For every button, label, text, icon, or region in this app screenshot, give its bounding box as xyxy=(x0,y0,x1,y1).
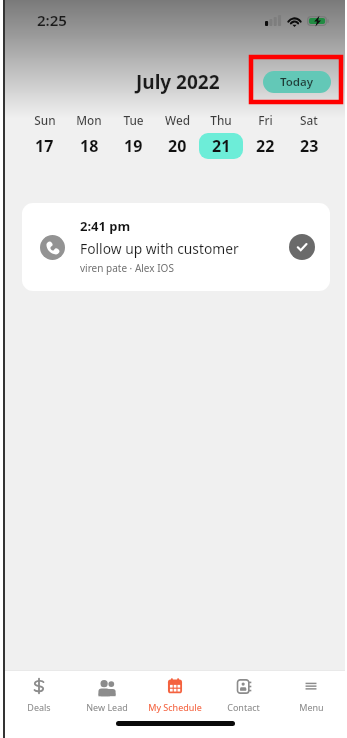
button[interactable]: Contact xyxy=(209,671,277,717)
staticText: 21 xyxy=(212,135,231,157)
staticText: My Schedule xyxy=(148,701,202,713)
staticText: viren pate · Alex IOS xyxy=(80,261,174,275)
staticText: Wed xyxy=(165,112,190,128)
button[interactable]: Mon xyxy=(67,112,111,159)
staticText: Mon xyxy=(76,112,102,128)
staticText: Contact xyxy=(227,701,260,713)
button[interactable]: Tue xyxy=(111,112,155,159)
staticText: New Lead xyxy=(86,701,128,713)
button[interactable]: New Lead xyxy=(73,671,141,717)
staticText: 22 xyxy=(256,135,275,157)
staticText: Sun xyxy=(34,112,56,128)
staticText: 18 xyxy=(80,135,99,157)
staticText: Thu xyxy=(210,112,232,128)
staticText: 2:25 xyxy=(37,10,67,30)
staticText: 2:41 pm xyxy=(80,217,131,235)
staticText: 19 xyxy=(124,135,143,157)
staticText: Today xyxy=(280,74,314,90)
button[interactable]: Fri xyxy=(243,112,287,159)
staticText: 17 xyxy=(35,135,54,157)
staticText: Fri xyxy=(258,112,273,128)
button[interactable]: 2:41 pm xyxy=(22,203,330,291)
staticText: Menu xyxy=(299,701,324,713)
staticText: Follow up with customer xyxy=(80,239,239,258)
staticText: Deals xyxy=(27,701,51,713)
staticText: 20 xyxy=(168,135,187,157)
button[interactable]: Sun xyxy=(22,112,67,159)
button[interactable]: Wed xyxy=(155,112,199,159)
button[interactable]: Deals xyxy=(5,671,73,717)
button[interactable]: Today xyxy=(263,71,331,93)
button[interactable]: My Schedule xyxy=(141,671,209,717)
button[interactable]: Thu xyxy=(199,112,243,159)
staticText: Tue xyxy=(123,112,144,128)
button[interactable]: Sat xyxy=(287,112,331,159)
staticText: Sat xyxy=(300,112,318,128)
button[interactable]: Menu xyxy=(277,671,345,717)
staticText: July 2022 xyxy=(136,69,220,95)
button[interactable]: Mark complete xyxy=(289,234,315,260)
staticText: 23 xyxy=(300,135,319,157)
